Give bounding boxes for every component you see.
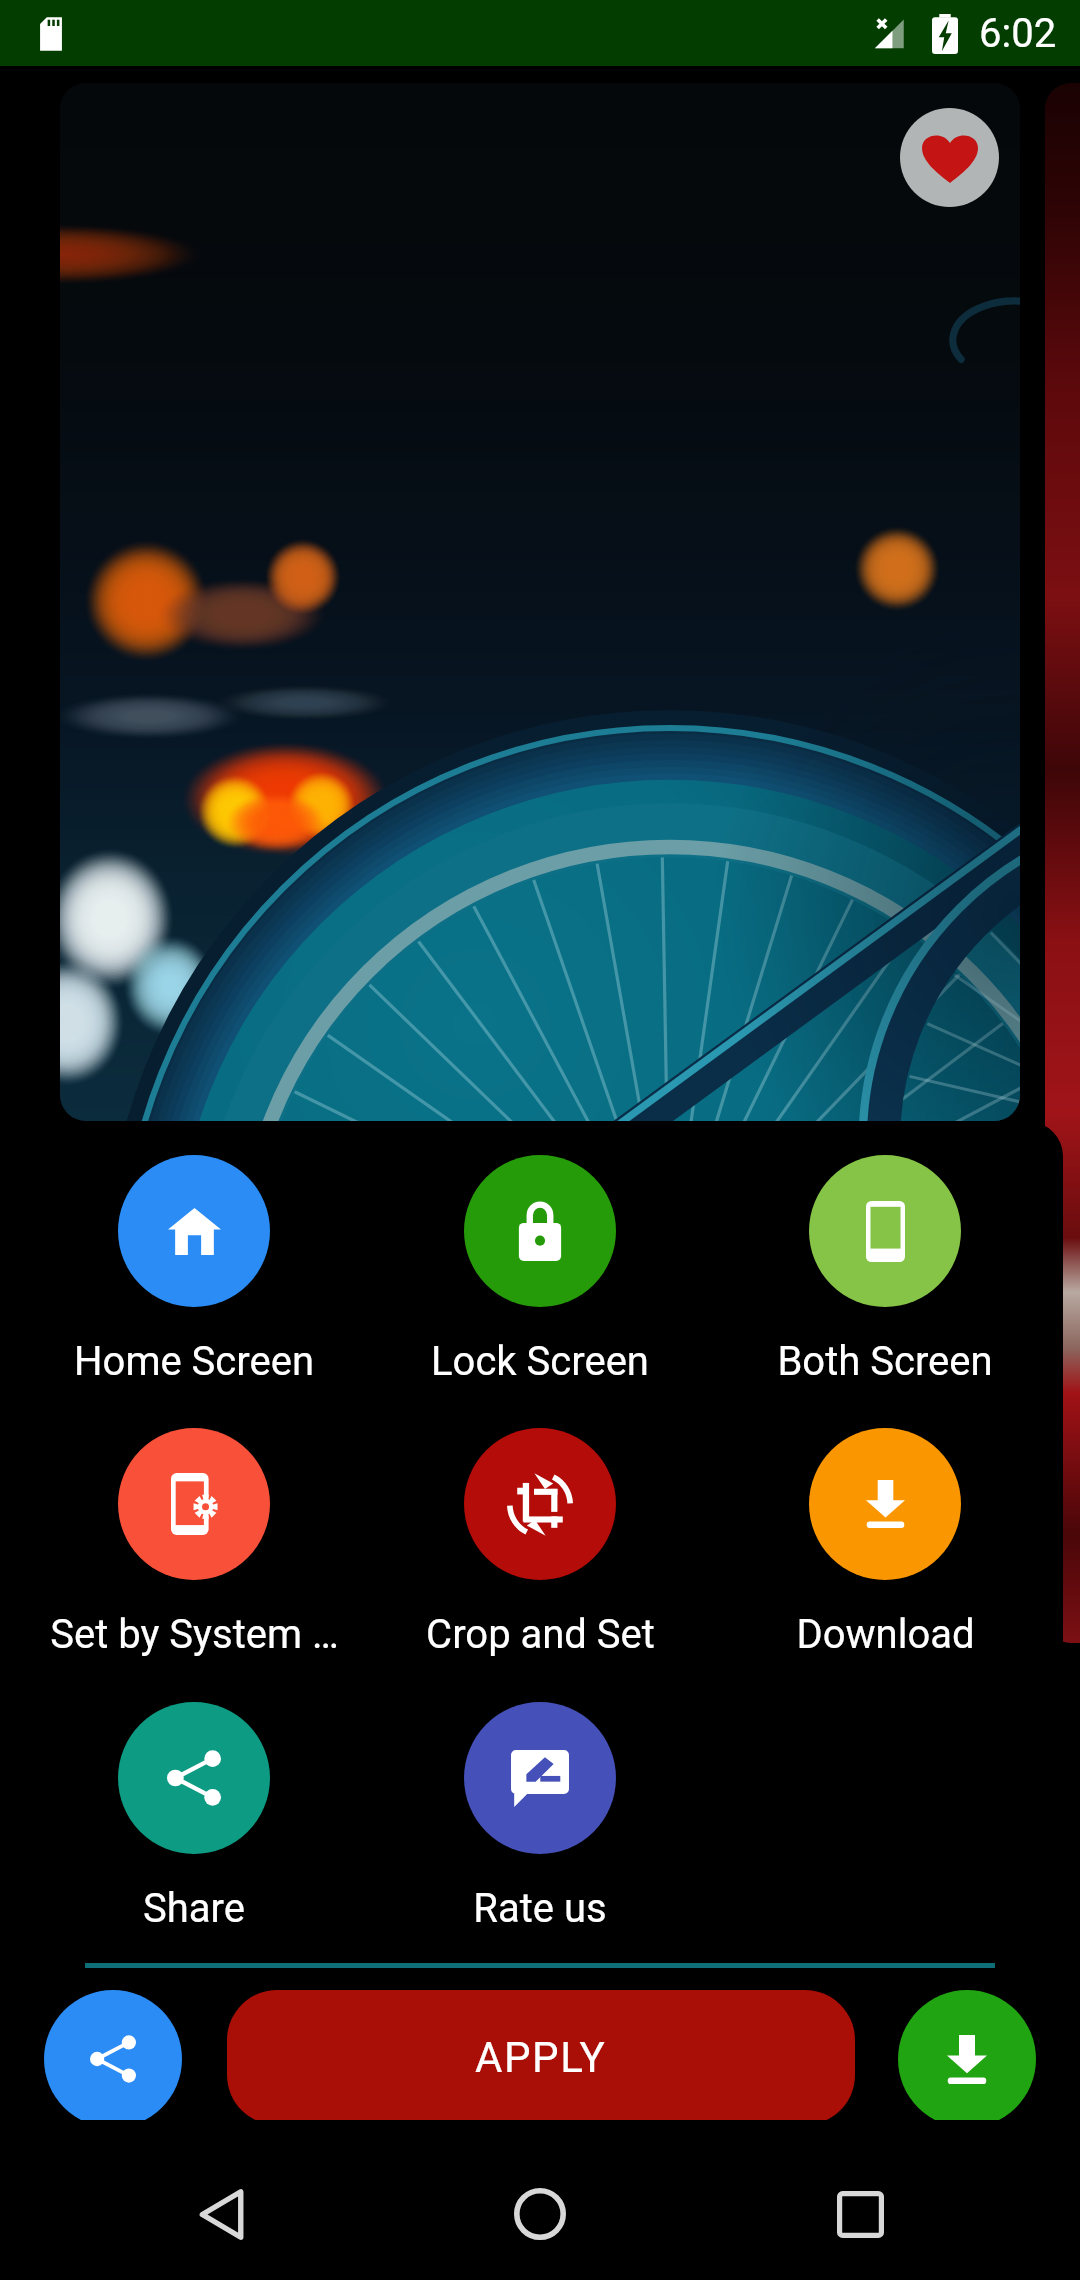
staticText: Lock Screen bbox=[431, 1338, 649, 1385]
staticText: Rate us bbox=[473, 1885, 607, 1932]
button[interactable]: Download bbox=[898, 1990, 1036, 2128]
button[interactable]: Both Screen bbox=[713, 1155, 1057, 1385]
button[interactable]: Home Screen bbox=[22, 1155, 366, 1385]
button[interactable]: APPLY bbox=[227, 1990, 855, 2125]
staticText: Crop and Set bbox=[426, 1611, 655, 1658]
button[interactable]: Back bbox=[161, 2154, 281, 2274]
button[interactable]: Share bbox=[22, 1702, 366, 1932]
staticText: Share bbox=[143, 1885, 245, 1932]
button[interactable]: Recents bbox=[800, 2154, 920, 2274]
staticText: Home Screen bbox=[74, 1338, 314, 1385]
button[interactable]: Lock Screen bbox=[368, 1155, 712, 1385]
button[interactable]: Wallpaper preview bbox=[60, 83, 1020, 1121]
staticText: Download bbox=[796, 1611, 975, 1658]
staticText: APPLY bbox=[475, 2033, 607, 2082]
staticText: Set by System … bbox=[50, 1611, 339, 1658]
staticText: Both Screen bbox=[777, 1338, 993, 1385]
button[interactable]: Home bbox=[480, 2154, 600, 2274]
button[interactable]: Favorite bbox=[900, 108, 999, 207]
button[interactable]: Share bbox=[44, 1990, 182, 2128]
button[interactable]: Set by System … bbox=[22, 1428, 366, 1658]
button[interactable]: Crop and Set bbox=[368, 1428, 712, 1658]
staticText: 6:02 bbox=[979, 10, 1057, 57]
button[interactable]: Rate us bbox=[368, 1702, 712, 1932]
button[interactable]: Download bbox=[713, 1428, 1057, 1658]
